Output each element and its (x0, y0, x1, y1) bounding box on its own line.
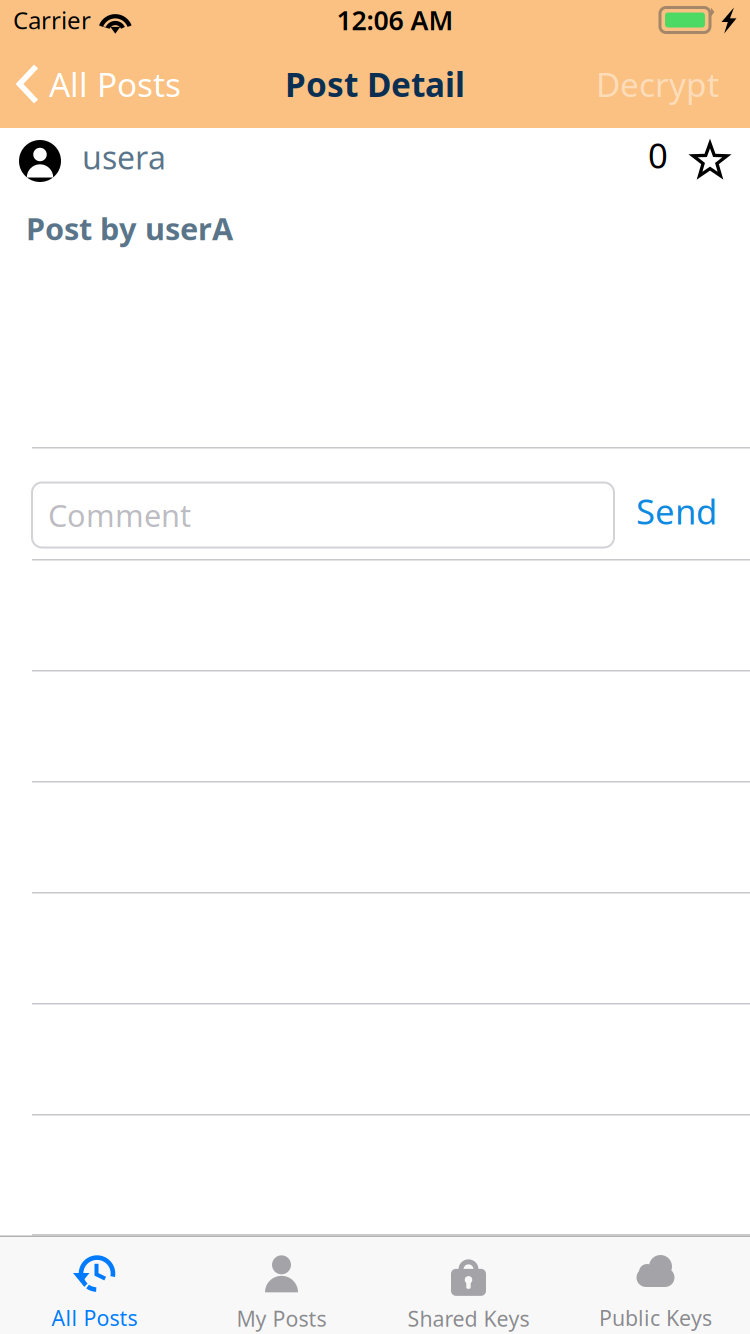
staticText: Decrypt (596, 62, 719, 106)
staticText: usera (82, 136, 166, 178)
button[interactable]: My Posts (188, 1237, 375, 1334)
button[interactable]: All Posts (1, 1237, 188, 1334)
staticText: 0 (648, 132, 668, 178)
staticText: Shared Keys (407, 1304, 529, 1333)
staticText: Post by userA (26, 208, 233, 249)
staticText: Send (636, 488, 717, 534)
staticText: Public Keys (599, 1304, 712, 1332)
button[interactable]: All Posts (0, 53, 191, 115)
button[interactable]: Public Keys (562, 1237, 749, 1334)
staticText: My Posts (236, 1304, 326, 1333)
button[interactable]: Send (636, 482, 750, 547)
button[interactable]: Decrypt (596, 53, 750, 115)
staticText: All Posts (51, 1304, 137, 1332)
staticText: Comment (48, 495, 191, 535)
staticText: 12:06 AM (336, 2, 453, 38)
staticText: All Posts (49, 62, 181, 106)
staticText: Carrier (13, 4, 91, 36)
button[interactable]: Favorite (690, 140, 730, 182)
staticText: Post Detail (285, 62, 465, 106)
button[interactable]: Shared Keys (375, 1237, 562, 1334)
